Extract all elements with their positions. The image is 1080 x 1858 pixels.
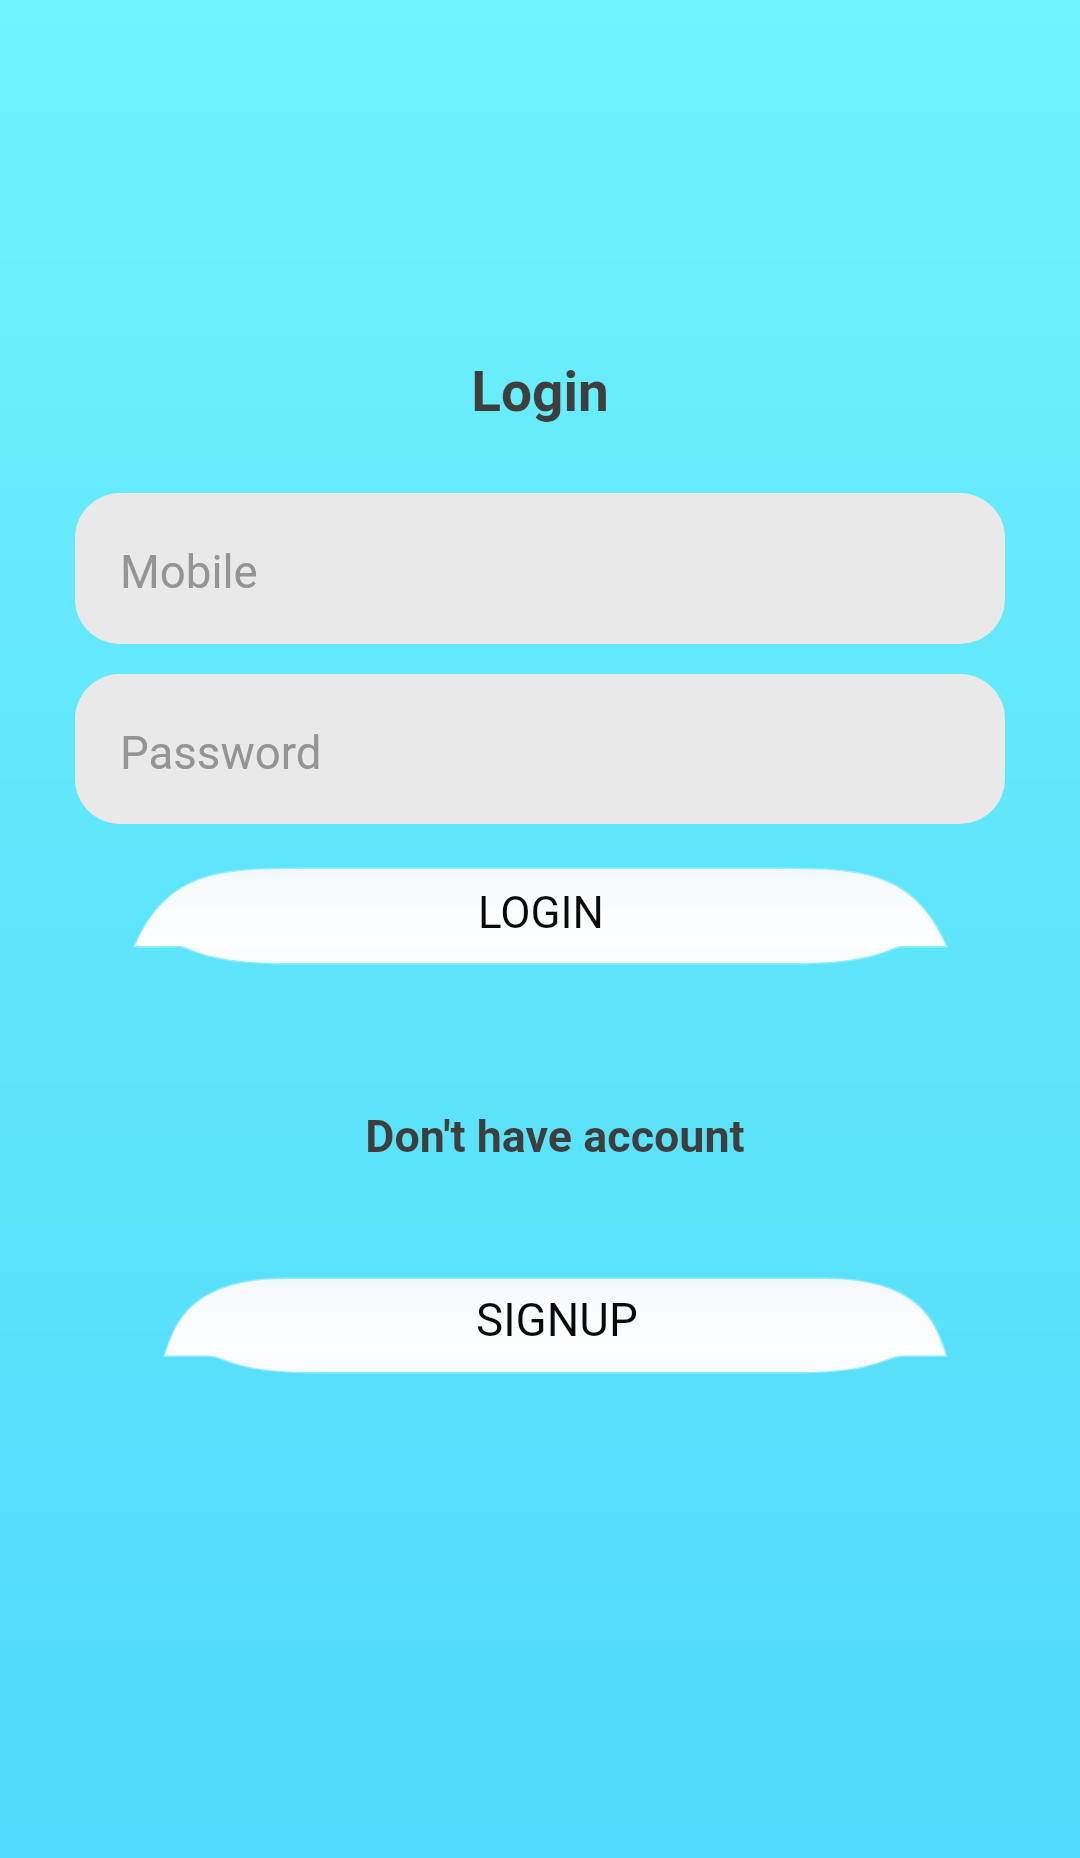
staticText: Login	[0, 360, 1080, 424]
staticText: Don't have account	[15, 1110, 1080, 1163]
staticText: Password	[120, 727, 322, 780]
staticText: SIGNUP	[476, 1294, 638, 1348]
staticText: LOGIN	[478, 887, 604, 939]
staticText: Mobile	[120, 546, 258, 599]
button[interactable]: Mobile	[75, 493, 1005, 644]
button[interactable]: LOGIN	[135, 869, 946, 963]
button[interactable]: SIGNUP	[165, 1279, 946, 1372]
button[interactable]: Password	[75, 674, 1005, 824]
